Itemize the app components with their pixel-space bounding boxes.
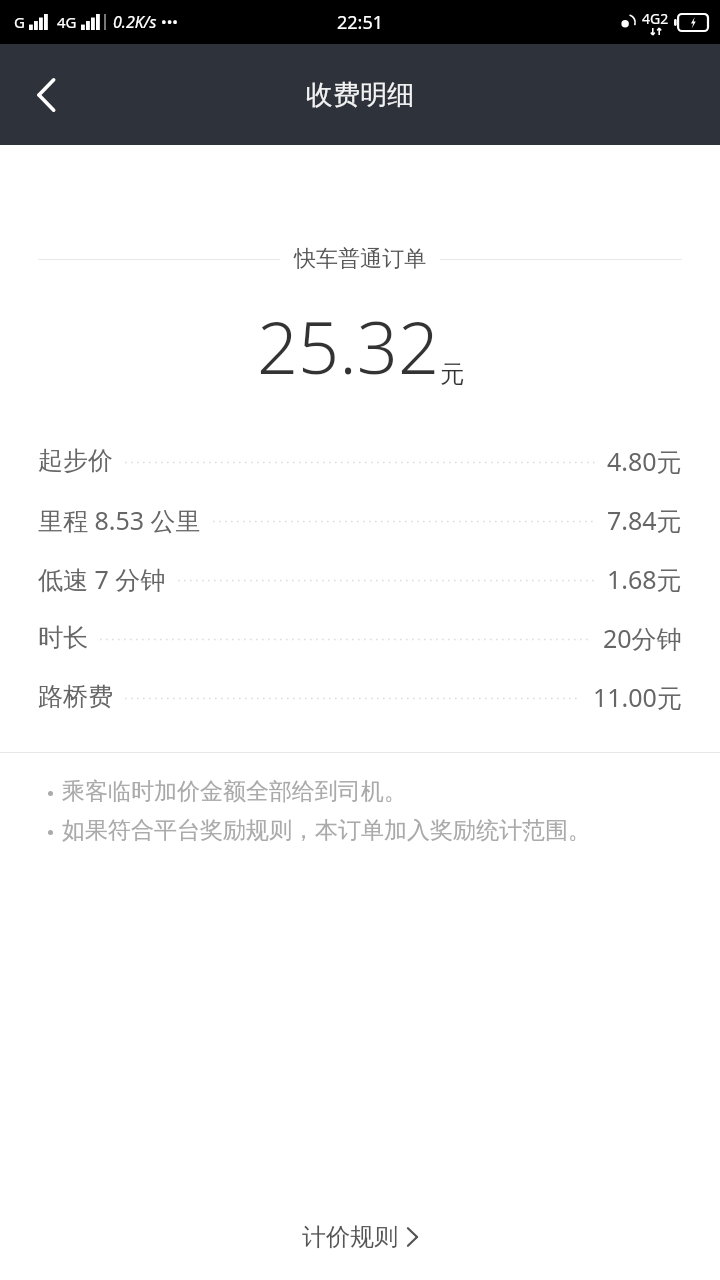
staticText: 元 xyxy=(440,359,464,389)
staticText: 22:51 xyxy=(337,10,384,35)
staticText: ••• xyxy=(161,12,178,32)
staticText: 7.84元 xyxy=(607,503,682,537)
staticText: 20分钟 xyxy=(603,621,682,655)
button[interactable]: 时长 xyxy=(0,608,720,667)
staticText: 如果符合平台奖励规则，本订单加入奖励统计范围。 xyxy=(62,816,591,845)
button[interactable]: 低速 7 分钟 xyxy=(0,549,720,608)
staticText: 计价规则 xyxy=(302,1222,398,1252)
button[interactable]: Back xyxy=(0,44,92,145)
staticText: 11.00元 xyxy=(593,680,682,714)
staticText: 起步价 xyxy=(38,445,113,476)
button[interactable]: 里程 8.53 公里 xyxy=(0,490,720,549)
staticText: 4.80元 xyxy=(607,444,682,478)
staticText: 里程 8.53 公里 xyxy=(38,503,201,537)
staticText: 路桥费 xyxy=(38,681,113,712)
staticText: 4G2 xyxy=(642,9,669,28)
staticText: 乘客临时加价金额全部给到司机。 xyxy=(62,777,407,806)
staticText: G xyxy=(14,12,25,32)
staticText: 4G xyxy=(57,12,77,32)
staticText: 低速 7 分钟 xyxy=(38,562,166,596)
button[interactable]: 路桥费 xyxy=(0,667,720,726)
staticText: 收费明细 xyxy=(306,78,414,112)
staticText: 快车普通订单 xyxy=(294,245,426,273)
staticText: 25.32 xyxy=(257,297,440,395)
staticText: 时长 xyxy=(38,622,88,653)
staticText: 0.2K/s xyxy=(113,11,157,33)
staticText: 1.68元 xyxy=(607,562,682,596)
button[interactable]: 计价规则 xyxy=(0,1194,720,1280)
button[interactable]: 起步价 xyxy=(0,431,720,490)
